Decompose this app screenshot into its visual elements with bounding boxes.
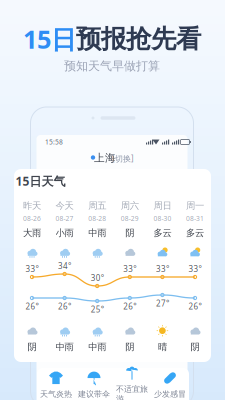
staticText: 今天 <box>56 200 74 211</box>
staticText: 33° <box>188 263 201 274</box>
staticText: 阴 <box>125 227 134 239</box>
staticText: 33° <box>25 263 38 274</box>
button[interactable]: 建议带伞 <box>75 369 113 400</box>
staticText: 26° <box>58 301 71 312</box>
staticText: 15:58 <box>45 138 63 146</box>
staticText: 阴 <box>27 341 36 353</box>
staticText: 33° <box>123 263 136 274</box>
staticText: 阴 <box>190 341 199 353</box>
staticText: 26° <box>123 301 136 312</box>
staticText: 多云 <box>186 227 204 239</box>
staticText: 小雨 <box>56 227 74 239</box>
staticText: 上海 <box>94 151 116 164</box>
staticText: 26° <box>25 301 38 312</box>
staticText: 27° <box>156 298 169 309</box>
staticText: [切换] <box>112 153 134 164</box>
staticText: 26° <box>188 301 201 312</box>
staticText: 08-31 <box>186 214 204 223</box>
staticText: 25° <box>91 304 104 315</box>
staticText: 中雨 <box>88 227 106 239</box>
staticText: 08-30 <box>153 214 171 223</box>
button[interactable]: 不适宜旅游 <box>113 369 151 400</box>
staticText: 08-28 <box>88 214 106 223</box>
staticText: 晴 <box>158 341 167 353</box>
staticText: 大雨 <box>23 227 41 239</box>
staticText: 08-29 <box>121 214 139 223</box>
button[interactable]: 天气炎热 <box>37 369 75 400</box>
staticText: 33° <box>156 263 169 274</box>
staticText: 周一 <box>186 200 204 211</box>
staticText: 多云 <box>153 227 171 239</box>
staticText: 预报抢先看 <box>76 23 201 54</box>
staticText: 周日 <box>153 200 171 211</box>
staticText: 08-26 <box>23 214 41 223</box>
staticText: 不适宜旅游 <box>116 384 148 400</box>
staticText: 中雨 <box>88 341 106 353</box>
staticText: 08-27 <box>56 214 74 223</box>
staticText: 周五 <box>88 200 106 211</box>
button[interactable]: 少发感冒 <box>151 369 189 400</box>
staticText: 34° <box>58 260 71 271</box>
staticText: 30° <box>91 272 104 283</box>
staticText: 中雨 <box>56 341 74 353</box>
staticText: 昨天 <box>23 200 41 211</box>
staticText: 预知天气早做打算 <box>64 59 160 73</box>
staticText: 天气炎热 <box>40 389 72 399</box>
staticText: 建议带伞 <box>78 389 110 399</box>
staticText: 阴 <box>125 341 134 353</box>
staticText: 少发感冒 <box>154 389 186 399</box>
staticText: 15日天气 <box>15 173 65 189</box>
staticText: 15日 <box>23 22 76 56</box>
staticText: 周六 <box>121 200 139 211</box>
